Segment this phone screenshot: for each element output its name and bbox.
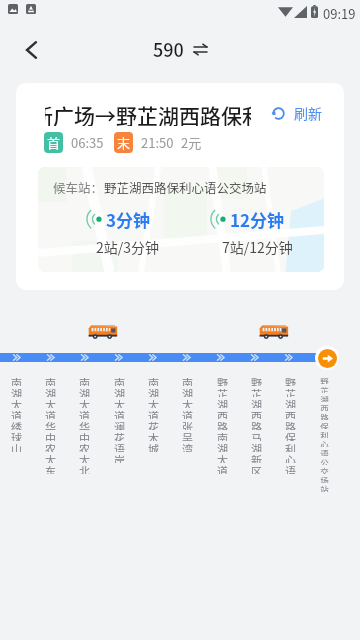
- staticText: 马: [251, 430, 262, 441]
- button[interactable]: 新广场→野芷湖西路保利心语公交场站: [45, 100, 251, 126]
- staticText: 大: [114, 397, 125, 408]
- staticText: 道: [148, 408, 159, 419]
- staticText: 绣: [11, 419, 22, 430]
- staticText: 09:19: [323, 4, 356, 23]
- staticText: 花: [148, 419, 159, 430]
- staticText: 590: [153, 36, 184, 62]
- staticText: 湖: [320, 393, 329, 402]
- staticText: 语: [320, 447, 329, 456]
- staticText: 路: [285, 419, 296, 430]
- staticText: 野: [320, 375, 329, 384]
- button[interactable]: 刷新: [271, 103, 322, 123]
- staticText: 湖: [114, 386, 125, 397]
- staticText: 南: [114, 375, 125, 386]
- staticText: 大: [11, 397, 22, 408]
- staticText: 城: [148, 441, 159, 452]
- button[interactable]: 野: [275, 375, 305, 474]
- staticText: 山: [11, 441, 22, 452]
- staticText: 2站/3分钟: [96, 237, 160, 257]
- staticText: 湖: [11, 386, 22, 397]
- staticText: 湖: [217, 397, 228, 408]
- staticText: 大: [45, 397, 56, 408]
- staticText: 道: [217, 463, 228, 474]
- staticText: 刷新: [294, 103, 322, 123]
- staticText: 区: [251, 463, 262, 474]
- button[interactable]: 南: [138, 375, 168, 452]
- staticText: 路: [320, 411, 329, 420]
- staticText: 候车站：: [53, 178, 104, 196]
- staticText: 保: [320, 420, 329, 429]
- staticText: 西: [285, 408, 296, 419]
- button[interactable]: Next stops: [318, 349, 337, 368]
- staticText: 06:35: [71, 133, 104, 152]
- staticText: 南: [182, 375, 193, 386]
- staticText: 湖: [79, 386, 90, 397]
- button[interactable]: 南: [35, 375, 65, 474]
- staticText: 道: [114, 408, 125, 419]
- staticText: 新广场→野芷湖西路保利心语公交场站: [45, 100, 251, 126]
- staticText: 湾: [182, 441, 193, 452]
- staticText: 南: [217, 430, 228, 441]
- staticText: 21:50: [141, 133, 174, 152]
- staticText: 保: [285, 430, 296, 441]
- staticText: 木: [148, 430, 159, 441]
- staticText: 南: [11, 375, 22, 386]
- staticText: 道: [11, 408, 22, 419]
- staticText: 芷: [251, 386, 262, 397]
- button[interactable]: 南: [104, 375, 134, 463]
- staticText: 末: [117, 133, 131, 152]
- staticText: 湖: [217, 441, 228, 452]
- staticText: 站: [320, 483, 329, 492]
- staticText: 野: [251, 375, 262, 386]
- staticText: 野芷湖西路保利心语公交场站: [104, 178, 267, 196]
- staticText: 北: [79, 463, 90, 474]
- staticText: 花: [114, 430, 125, 441]
- staticText: 球: [11, 430, 22, 441]
- button[interactable]: 野: [309, 375, 339, 492]
- staticText: 湖: [45, 386, 56, 397]
- staticText: 野: [285, 375, 296, 386]
- staticText: 湖: [148, 386, 159, 397]
- staticText: 大: [45, 452, 56, 463]
- staticText: 道: [45, 408, 56, 419]
- staticText: 语: [114, 441, 125, 452]
- staticText: 西: [320, 402, 329, 411]
- staticText: 场: [320, 474, 329, 483]
- staticText: 中: [79, 430, 90, 441]
- staticText: 公: [320, 456, 329, 465]
- staticText: 湖: [285, 397, 296, 408]
- staticText: 张: [182, 419, 193, 430]
- button[interactable]: 野: [241, 375, 271, 474]
- button[interactable]: Back: [13, 33, 47, 67]
- staticText: 2元: [181, 133, 202, 152]
- staticText: 农: [79, 441, 90, 452]
- staticText: 南: [148, 375, 159, 386]
- staticText: 语: [285, 463, 296, 474]
- staticText: 湖: [182, 386, 193, 397]
- staticText: 路: [217, 419, 228, 430]
- staticText: 大: [79, 397, 90, 408]
- button[interactable]: 590: [153, 36, 207, 62]
- button[interactable]: 南: [1, 375, 31, 452]
- staticText: 大: [148, 397, 159, 408]
- staticText: 西: [251, 408, 262, 419]
- button[interactable]: 南: [69, 375, 99, 474]
- staticText: 澜: [114, 419, 125, 430]
- staticText: 西: [217, 408, 228, 419]
- staticText: 中: [45, 430, 56, 441]
- staticText: 道: [182, 408, 193, 419]
- button[interactable]: 野: [207, 375, 237, 474]
- staticText: 3分钟: [106, 207, 151, 232]
- staticText: 华: [79, 419, 90, 430]
- staticText: 野: [217, 375, 228, 386]
- staticText: 湖: [251, 441, 262, 452]
- staticText: 利: [285, 441, 296, 452]
- button[interactable]: 南: [172, 375, 202, 452]
- staticText: 芷: [217, 386, 228, 397]
- staticText: 南: [45, 375, 56, 386]
- staticText: 利: [320, 429, 329, 438]
- staticText: 东: [45, 463, 56, 474]
- staticText: 湖: [251, 397, 262, 408]
- staticText: 新: [251, 452, 262, 463]
- staticText: 路: [251, 419, 262, 430]
